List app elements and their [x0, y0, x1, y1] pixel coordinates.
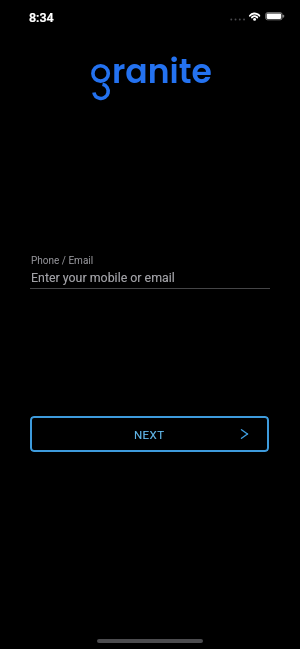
staticText: 8:34 — [29, 10, 54, 25]
staticText: ranite — [112, 48, 212, 94]
staticText: Phone / Email — [31, 255, 94, 267]
staticText: Enter your mobile or email — [31, 270, 175, 285]
button[interactable]: NEXT — [30, 416, 269, 452]
staticText: NEXT — [134, 428, 165, 441]
